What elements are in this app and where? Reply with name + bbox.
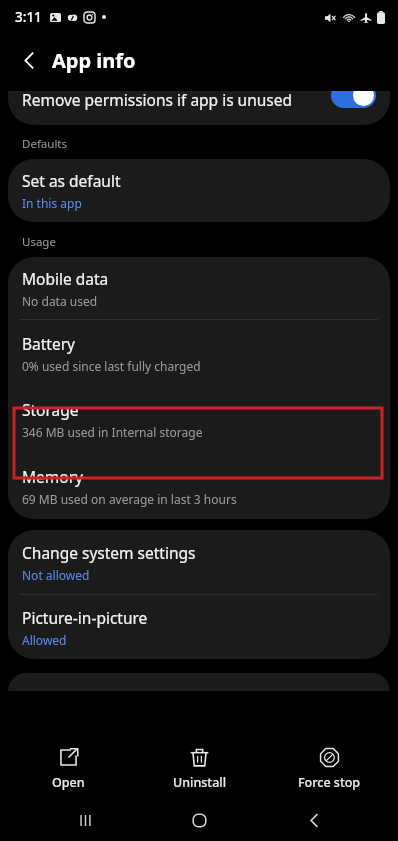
staticText: Usage bbox=[22, 234, 56, 250]
staticText: Open bbox=[52, 774, 85, 791]
staticText: Uninstall bbox=[173, 774, 227, 791]
button[interactable]: Memory bbox=[8, 453, 390, 519]
staticText: Change system settings bbox=[22, 542, 196, 563]
button[interactable]: Force stop bbox=[267, 738, 392, 800]
button[interactable]: Back bbox=[9, 40, 49, 80]
staticText: Battery bbox=[22, 333, 76, 354]
button[interactable]: Mobile data bbox=[8, 257, 390, 319]
button[interactable]: Battery bbox=[8, 320, 390, 386]
staticText: Remove permissions if app is unused bbox=[22, 91, 293, 110]
staticText: App info bbox=[52, 47, 136, 74]
other: Open bbox=[58, 747, 79, 768]
staticText: Set as default bbox=[22, 170, 121, 191]
other: Force stop bbox=[319, 747, 340, 768]
other: Uninstall bbox=[189, 747, 210, 768]
staticText: Picture-in-picture bbox=[22, 607, 148, 628]
staticText: Not allowed bbox=[22, 567, 90, 583]
button[interactable] bbox=[8, 673, 390, 691]
staticText: Allowed bbox=[22, 632, 67, 648]
button[interactable]: Storage bbox=[8, 386, 390, 453]
button[interactable]: Open bbox=[6, 738, 131, 800]
staticText: Defaults bbox=[22, 136, 68, 152]
button[interactable]: Change system settings bbox=[8, 530, 390, 594]
button[interactable]: Uninstall bbox=[137, 738, 262, 800]
staticText: Force stop bbox=[298, 774, 361, 791]
button[interactable]: Picture-in-picture bbox=[8, 595, 390, 659]
button[interactable]: Set as default bbox=[8, 159, 390, 222]
staticText: 3:11 bbox=[15, 8, 42, 26]
button[interactable]: Back bbox=[284, 800, 344, 841]
staticText: 69 MB used on average in last 3 hours bbox=[22, 491, 237, 507]
staticText: Mobile data bbox=[22, 268, 109, 289]
button[interactable]: Recent apps bbox=[55, 800, 115, 841]
staticText: No data used bbox=[22, 293, 98, 309]
staticText: In this app bbox=[22, 195, 82, 211]
staticText: Memory bbox=[22, 466, 83, 487]
button[interactable]: Home bbox=[169, 800, 229, 841]
staticText: 346 MB used in Internal storage bbox=[22, 424, 203, 440]
staticText: Storage bbox=[22, 399, 79, 420]
button[interactable]: Remove permissions if app is unused bbox=[8, 91, 390, 125]
staticText: 0% used since last fully charged bbox=[22, 358, 201, 374]
